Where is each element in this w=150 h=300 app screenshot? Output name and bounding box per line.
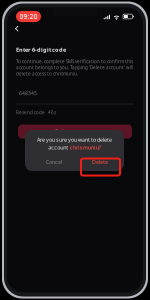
staticText: Delete account: [55, 128, 95, 135]
staticText: 09:20: [19, 12, 37, 21]
button[interactable]: Delete: [88, 156, 112, 167]
staticText: Cancel: [46, 158, 62, 166]
button[interactable]: Delete account: [18, 124, 132, 138]
staticText: Enter 6-digit code: [16, 46, 66, 53]
staticText: chrismuniu?: [70, 144, 101, 151]
staticText: To continue, complete SMS verification t…: [16, 58, 133, 77]
button[interactable]: Cancel: [42, 156, 66, 167]
staticText: Are you sure you want to delete: [37, 136, 112, 143]
staticText: account: [48, 144, 68, 151]
staticText: Delete: [92, 158, 108, 166]
staticText: Resend code 46s: [16, 109, 56, 116]
staticText: 648345: [19, 90, 37, 97]
button[interactable]: Back: [11, 22, 23, 35]
